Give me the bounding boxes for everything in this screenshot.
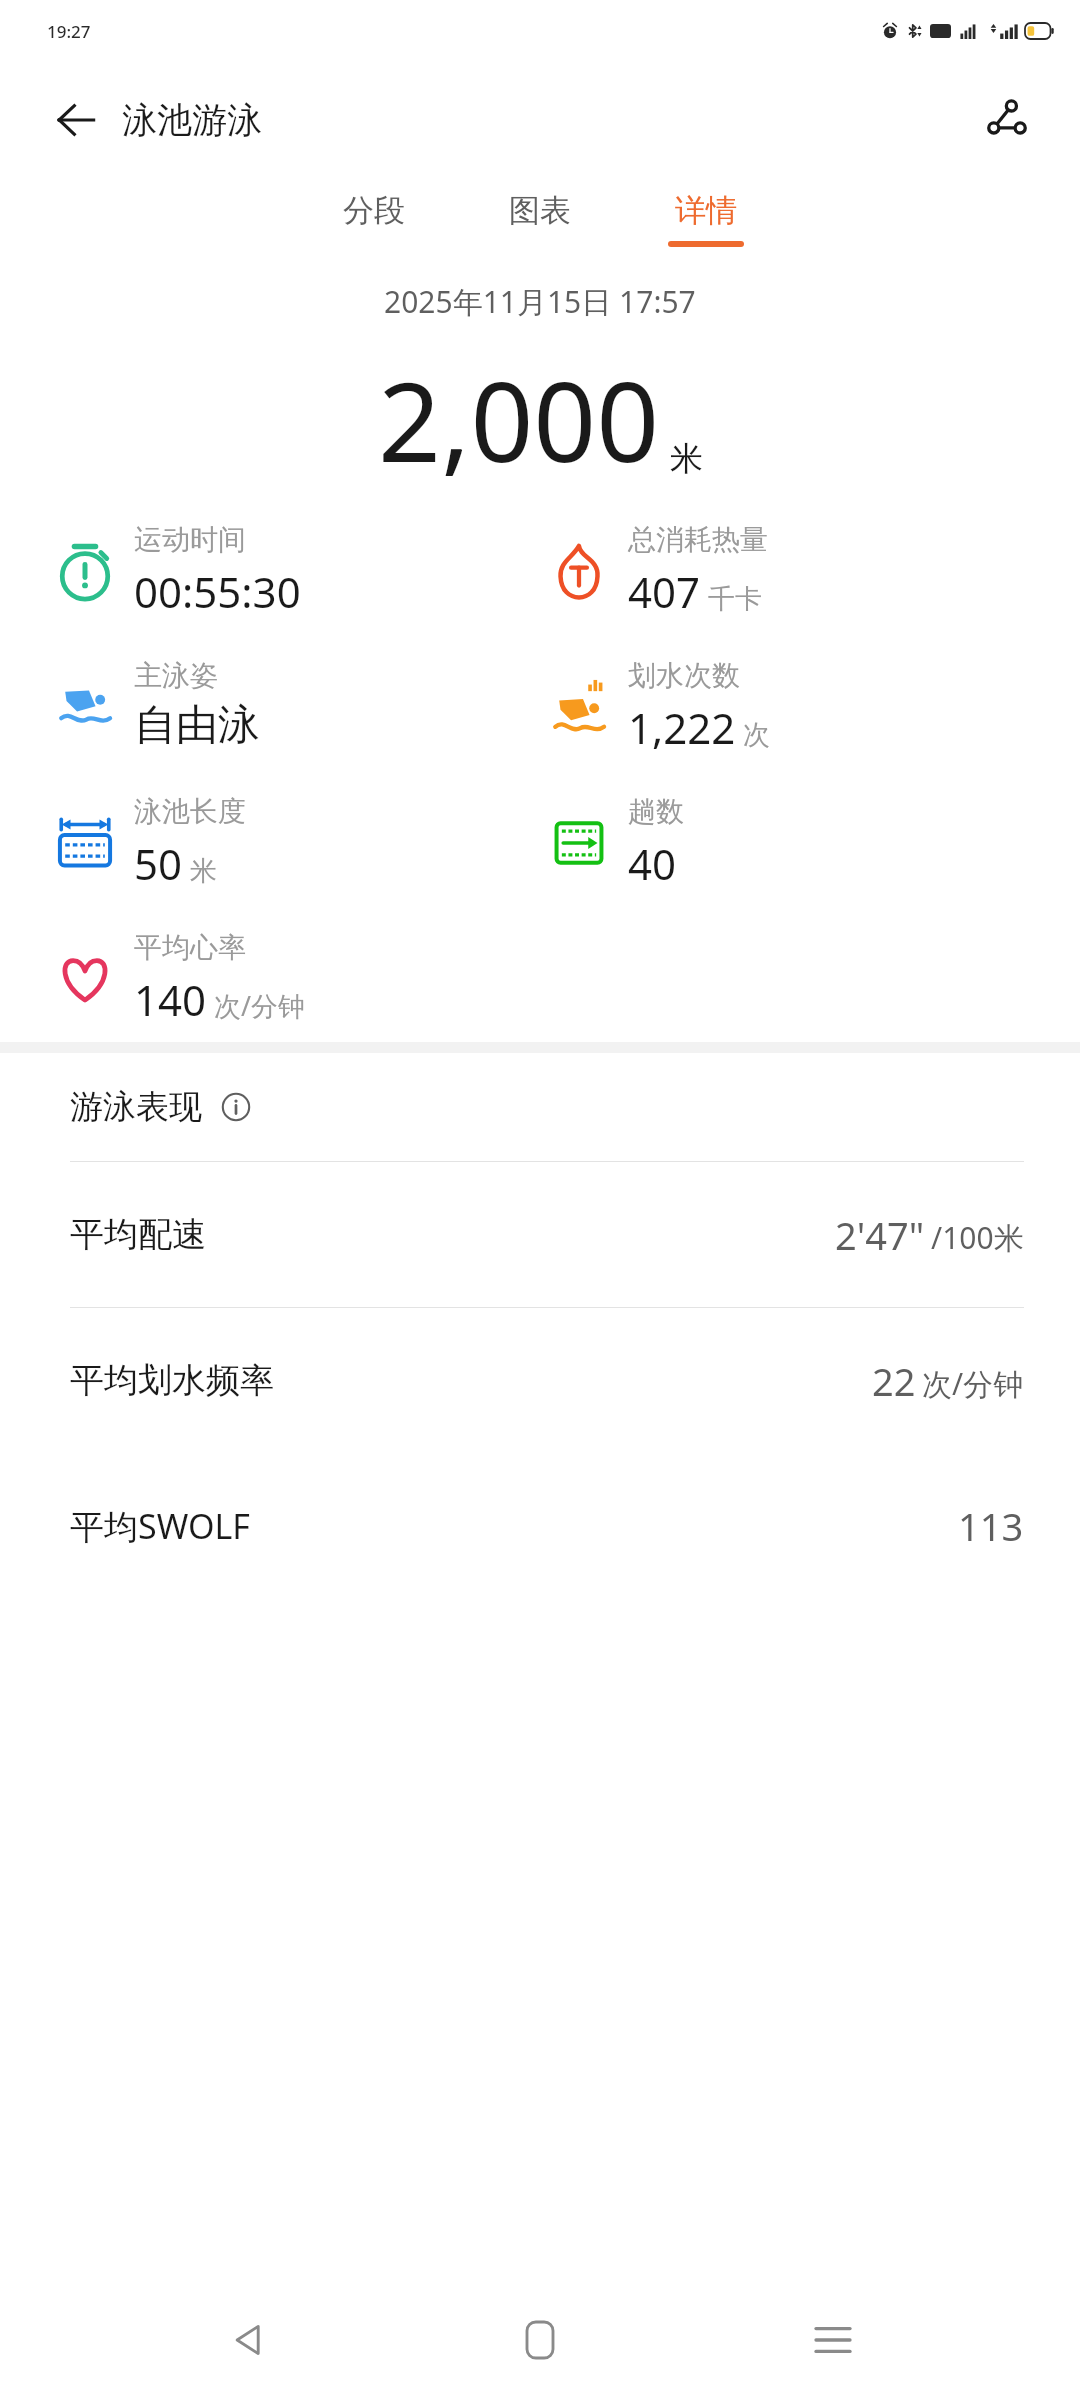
- staticText: 自由泳: [134, 699, 260, 752]
- staticText: 次/分钟: [214, 987, 306, 1024]
- button[interactable]: Share: [972, 85, 1042, 155]
- staticText: 50: [134, 835, 183, 892]
- button[interactable]: Info: [216, 1087, 256, 1127]
- button[interactable]: 分段: [324, 183, 424, 255]
- button[interactable]: Home: [495, 2295, 585, 2385]
- staticText: 泳池游泳: [122, 98, 262, 142]
- staticText: 详情: [675, 191, 737, 230]
- button[interactable]: 平均配速: [0, 1161, 1080, 1307]
- staticText: 平均配速: [70, 1213, 206, 1256]
- staticText: 千卡: [708, 582, 762, 616]
- button[interactable]: 泳池长度: [52, 794, 254, 892]
- staticText: 分段: [343, 191, 405, 230]
- button[interactable]: 平均心率: [52, 930, 314, 1028]
- staticText: 总消耗热量: [628, 522, 768, 557]
- staticText: 平均心率: [134, 930, 246, 965]
- button[interactable]: 平均划水频率: [0, 1307, 1080, 1453]
- staticText: 米: [190, 854, 217, 888]
- button[interactable]: Back: [203, 2295, 293, 2385]
- staticText: 19:27: [47, 20, 91, 43]
- button[interactable]: 总消耗热量: [546, 522, 776, 620]
- staticText: 次: [743, 718, 770, 752]
- staticText: 00:55:30: [134, 563, 301, 620]
- button[interactable]: 运动时间: [52, 522, 309, 620]
- staticText: 运动时间: [134, 522, 246, 557]
- staticText: 2'47": [835, 1209, 925, 1261]
- staticText: 泳池长度: [134, 794, 246, 829]
- button[interactable]: 主泳姿: [52, 658, 268, 752]
- staticText: 趟数: [628, 794, 684, 829]
- staticText: 米: [670, 438, 703, 480]
- staticText: 2025年11月15日 17:57: [384, 281, 696, 322]
- button[interactable]: 趟数: [546, 794, 692, 892]
- staticText: 平均划水频率: [70, 1359, 274, 1402]
- staticText: 2,000: [378, 344, 660, 494]
- staticText: 游泳表现: [70, 1086, 202, 1128]
- staticText: 图表: [509, 191, 571, 230]
- button[interactable]: Recent apps: [788, 2295, 878, 2385]
- button[interactable]: 图表: [490, 183, 590, 255]
- staticText: 次/分钟: [922, 1363, 1024, 1404]
- staticText: 40: [628, 835, 677, 892]
- staticText: 平均SWOLF: [70, 1503, 250, 1549]
- staticText: 407: [628, 563, 701, 620]
- staticText: 22: [872, 1355, 916, 1407]
- button[interactable]: 划水次数: [546, 658, 778, 756]
- button[interactable]: 平均SWOLF: [0, 1453, 1080, 1598]
- staticText: 113: [958, 1500, 1024, 1552]
- staticText: 主泳姿: [134, 658, 218, 693]
- staticText: 1,222: [628, 699, 736, 756]
- staticText: /100米: [931, 1217, 1024, 1258]
- button[interactable]: 详情: [656, 183, 756, 255]
- staticText: 140: [134, 971, 207, 1028]
- staticText: 划水次数: [628, 658, 740, 693]
- button[interactable]: Back: [44, 88, 108, 152]
